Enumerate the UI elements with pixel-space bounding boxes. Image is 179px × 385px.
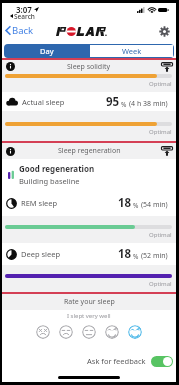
staticText: Sleep solidity [67, 62, 111, 72]
staticText: I slept very well [67, 312, 111, 320]
staticText: Actual sleep [22, 97, 65, 107]
button[interactable]: Day [4, 44, 89, 58]
staticText: (52 min) [141, 251, 168, 261]
button[interactable]: Back [5, 24, 34, 37]
button[interactable]: Info about Sleep regeneration [5, 146, 16, 157]
button[interactable]: Settings [157, 24, 171, 38]
button[interactable]: Info about Sleep solidity [5, 61, 16, 72]
staticText: Week [122, 46, 142, 56]
staticText: Optimal [149, 231, 172, 239]
button[interactable]: Sleep rating 1 [36, 325, 50, 339]
staticText: Optimal [149, 128, 172, 136]
button[interactable]: Actual sleep [6, 92, 168, 111]
button[interactable]: Sleep rating 3 [82, 325, 96, 339]
button[interactable]: Ask for feedback [2, 350, 173, 372]
staticText: 18 [118, 246, 132, 262]
staticText: % [121, 100, 127, 109]
staticText: Rate your sleep [64, 297, 115, 307]
button[interactable]: Collapse section [161, 61, 173, 73]
staticText: (4 h 38 min) [129, 99, 168, 109]
staticText: REM sleep [21, 198, 58, 208]
staticText: 18 [118, 195, 132, 211]
staticText: Search [14, 12, 35, 19]
staticText: Good regeneration [19, 163, 95, 174]
staticText: (54 min) [141, 200, 168, 210]
staticText: Sleep regeneration [58, 146, 121, 156]
button[interactable]: Deep sleep [6, 243, 168, 265]
button[interactable]: Good regeneration [8, 159, 176, 190]
button[interactable]: Week [89, 44, 174, 58]
staticText: 3:07 [16, 4, 32, 15]
staticText: Back [12, 24, 34, 37]
staticText: Deep sleep [21, 249, 61, 259]
staticText: Building baseline [19, 176, 80, 186]
staticText: 95 [106, 94, 120, 110]
button[interactable]: Collapse section [161, 145, 173, 157]
button[interactable]: Sleep rating 5 [128, 325, 142, 339]
staticText: % [133, 201, 139, 210]
staticText: Ask for feedback [87, 356, 146, 366]
button[interactable]: REM sleep [6, 190, 168, 216]
staticText: % [133, 252, 139, 261]
staticText: Optimal [149, 280, 172, 288]
button[interactable]: Sleep rating 2 [59, 325, 73, 339]
staticText: Day [40, 46, 54, 56]
button[interactable]: Sleep rating 4 [105, 325, 119, 339]
staticText: Optimal [149, 80, 172, 88]
